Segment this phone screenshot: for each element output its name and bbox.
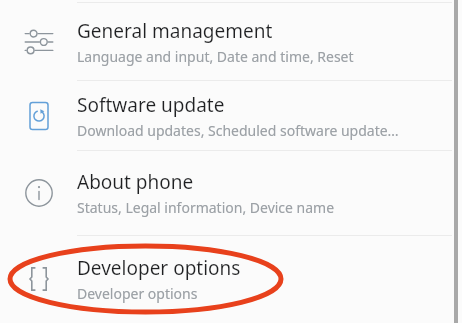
button[interactable]: General management: [0, 3, 462, 80]
staticText: About phone: [77, 169, 194, 195]
staticText: Developer options: [77, 284, 198, 303]
staticText: Software update: [77, 92, 225, 118]
other: About phone: [0, 151, 77, 235]
button[interactable]: Software update: [0, 81, 462, 150]
staticText: Developer options: [77, 255, 241, 281]
other: General management: [0, 3, 77, 80]
staticText: Download updates, Scheduled software upd…: [77, 121, 399, 140]
staticText: Language and input, Date and time, Reset: [77, 47, 354, 66]
other: Developer options: [0, 236, 77, 322]
button[interactable]: About phone: [0, 151, 462, 235]
button[interactable]: Developer options: [0, 236, 462, 322]
staticText: General management: [77, 18, 273, 44]
staticText: Status, Legal information, Device name: [77, 198, 335, 217]
other: Software update: [0, 81, 77, 150]
